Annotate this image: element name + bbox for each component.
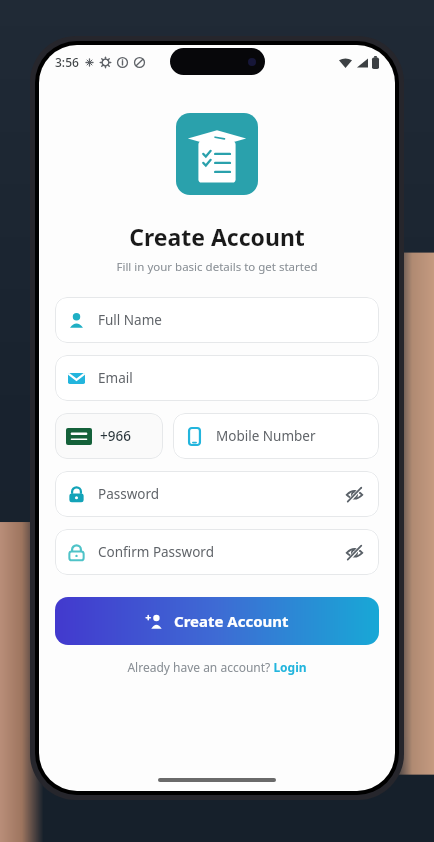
staticText: Confirm Password	[98, 543, 342, 561]
staticText: Create Account	[174, 611, 289, 631]
staticText: 3:56	[55, 54, 79, 70]
button[interactable]: Already have an account? Login	[127, 659, 307, 675]
button[interactable]: Toggle password visibility	[342, 540, 366, 564]
button[interactable]: Confirm Password	[55, 529, 379, 575]
staticText: Already have an account? Login	[127, 659, 307, 675]
staticText: Fill in your basic details to get starte…	[39, 259, 395, 275]
button[interactable]: Mobile Number	[173, 413, 379, 459]
staticText: +966	[100, 427, 131, 445]
staticText: Full Name	[98, 311, 366, 329]
button[interactable]: Toggle password visibility	[342, 482, 366, 506]
button[interactable]: Full Name	[55, 297, 379, 343]
button[interactable]: Email	[55, 355, 379, 401]
button[interactable]: +966	[55, 413, 163, 459]
staticText: Email	[98, 369, 366, 387]
staticText: Password	[98, 485, 342, 503]
button[interactable]: Password	[55, 471, 379, 517]
staticText: Create Account	[39, 221, 395, 252]
staticText: Mobile Number	[216, 427, 316, 445]
button[interactable]: Create Account	[55, 597, 379, 645]
